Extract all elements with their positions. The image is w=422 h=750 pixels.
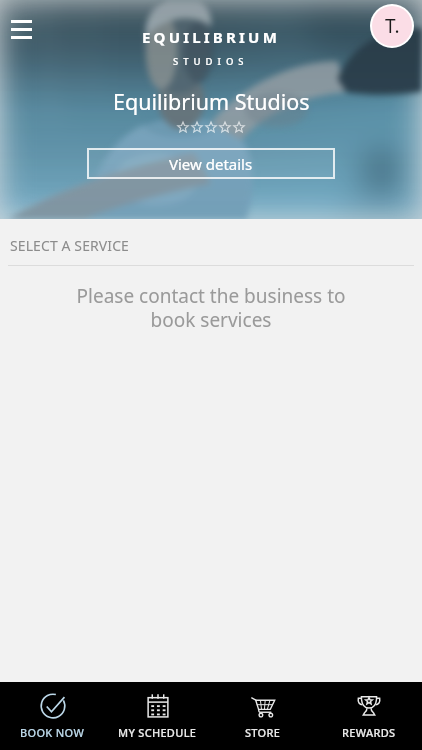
button[interactable]: MY SCHEDULE [105,682,210,750]
staticText: EQUILIBRIUM [142,27,280,47]
staticText: View details [169,154,253,174]
staticText: T. [385,13,400,39]
staticText: MY SCHEDULE [118,725,197,740]
staticText: SELECT A SERVICE [10,236,130,255]
button[interactable]: T. [372,6,412,46]
button[interactable]: STORE [210,682,316,750]
button[interactable]: REWARDS [316,682,422,750]
button[interactable]: BOOK NOW [0,682,105,750]
staticText: Equilibrium Studios [113,87,310,116]
staticText: Please contact the business to book serv… [24,283,398,332]
staticText: REWARDS [342,725,396,740]
staticText: STUDIOS [173,55,249,68]
button[interactable]: Menu [2,9,40,47]
button[interactable]: View details [87,148,335,179]
staticText: BOOK NOW [20,725,85,740]
staticText: STORE [245,725,281,740]
